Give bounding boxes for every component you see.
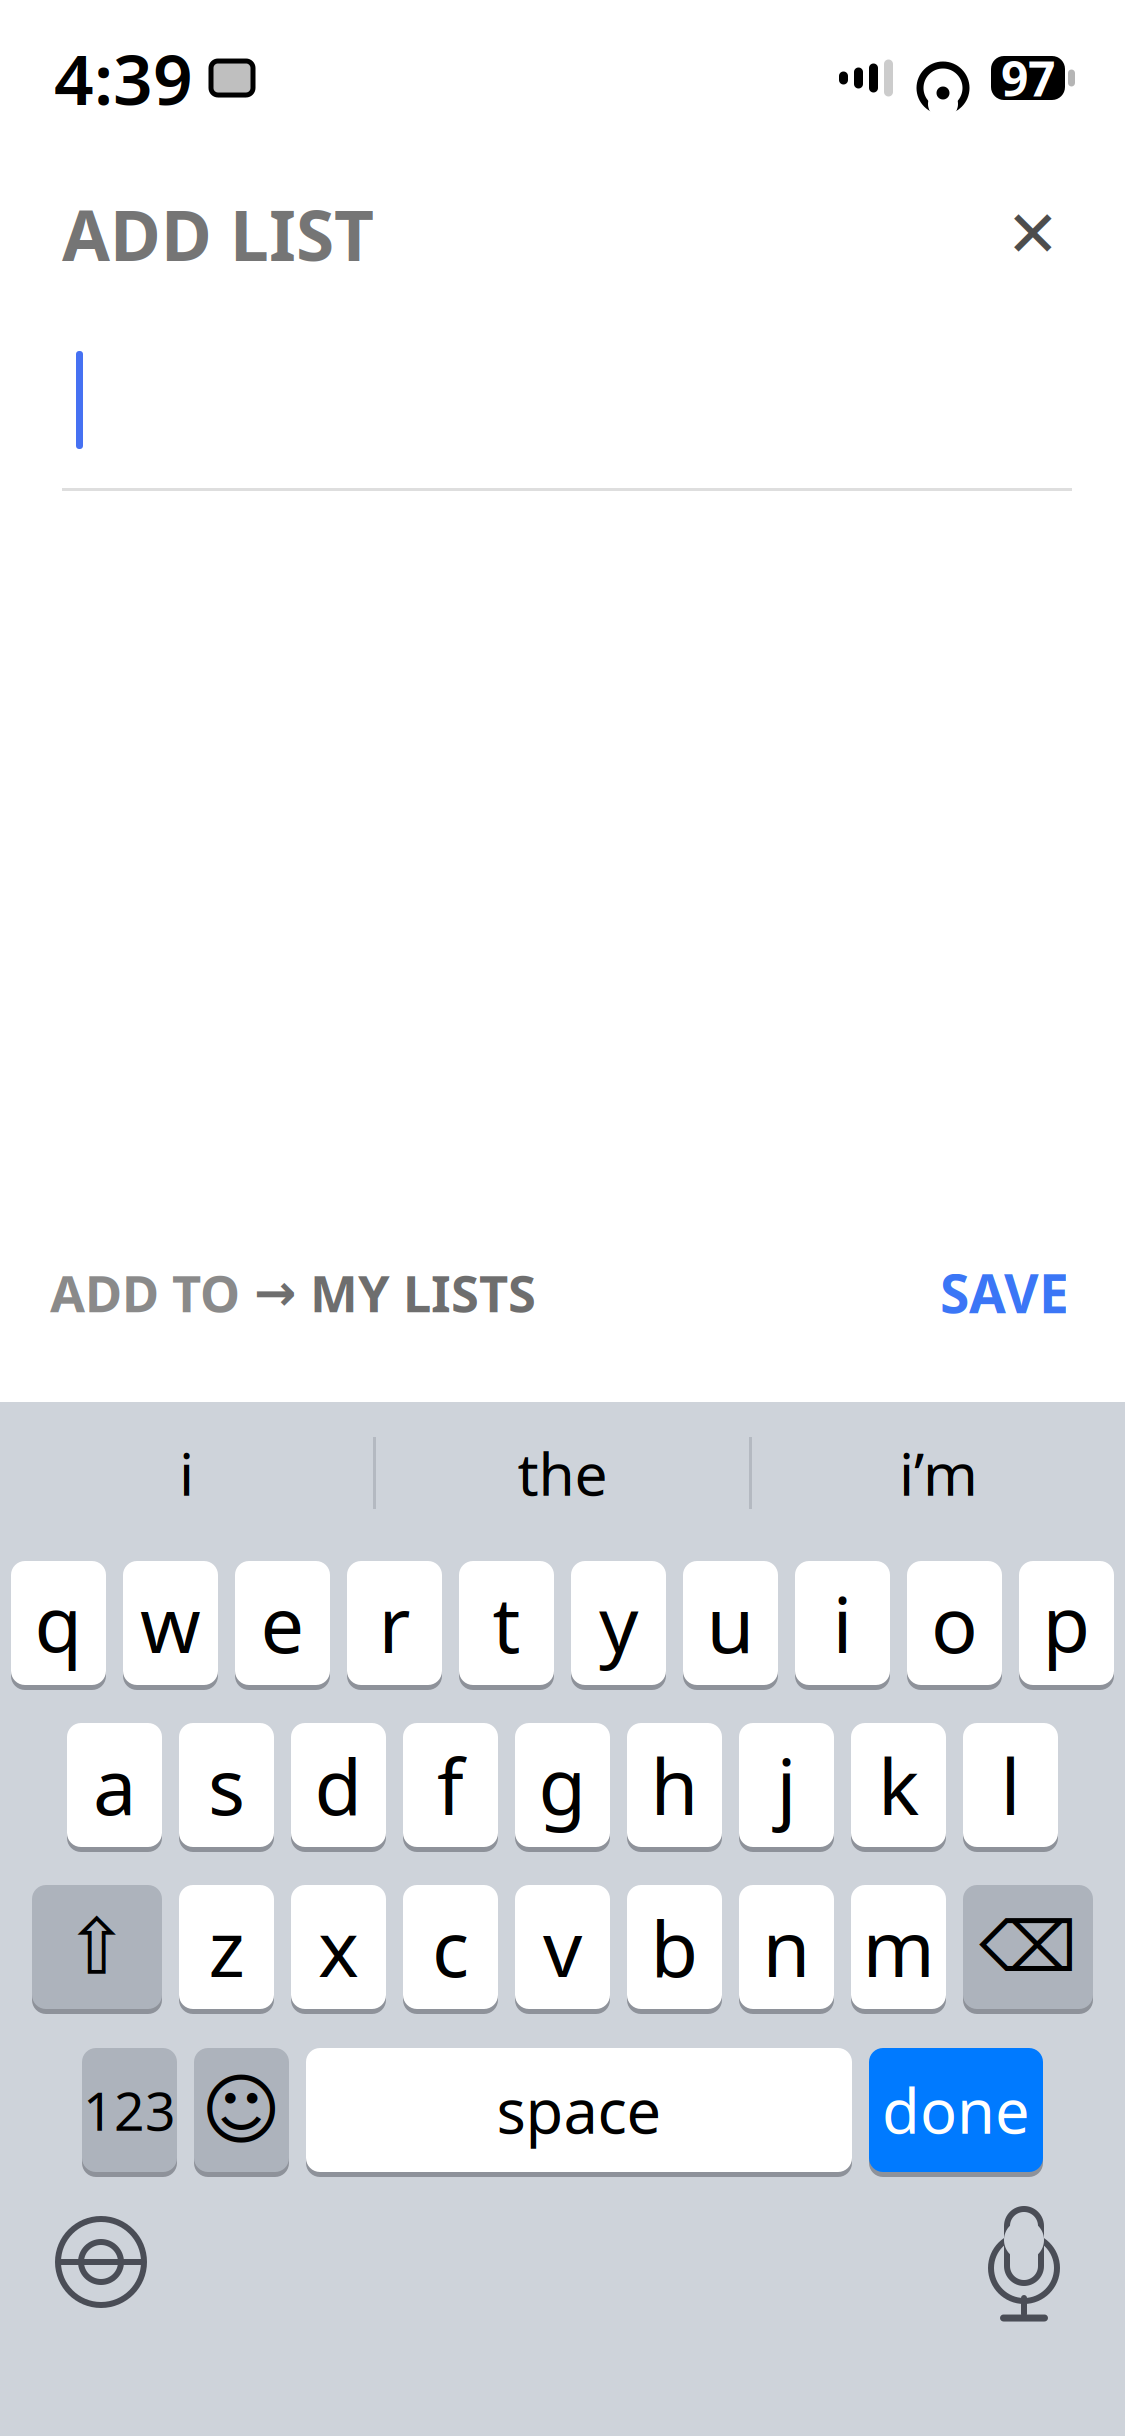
staticText: z	[208, 1896, 244, 1998]
staticText: l	[1000, 1734, 1020, 1836]
staticText: v	[543, 1896, 582, 1998]
button[interactable]: q	[11, 1558, 106, 1688]
button[interactable]: d	[291, 1720, 386, 1850]
button[interactable]: u	[683, 1558, 778, 1688]
button[interactable]: the	[376, 1402, 749, 1544]
staticText: i’m	[899, 1434, 978, 1512]
staticText: q	[34, 1572, 82, 1674]
button[interactable]: space	[306, 2045, 852, 2175]
button[interactable]: i	[795, 1558, 890, 1688]
button[interactable]: g	[515, 1720, 610, 1850]
staticText: ⌫	[979, 1908, 1077, 1986]
button[interactable]: t	[459, 1558, 554, 1688]
staticText: SAVE	[940, 1257, 1069, 1328]
button[interactable]: b	[627, 1882, 722, 2012]
staticText: i	[179, 1434, 194, 1512]
staticText: m	[862, 1896, 934, 1998]
staticText: space	[496, 2069, 661, 2151]
staticText: b	[650, 1896, 698, 1998]
staticText: u	[706, 1572, 754, 1674]
button[interactable]: f	[403, 1720, 498, 1850]
button[interactable]: Dictation	[959, 2197, 1089, 2327]
staticText: ☺	[201, 2066, 282, 2154]
button[interactable]: w	[123, 1558, 218, 1688]
button[interactable]: p	[1019, 1558, 1114, 1688]
button[interactable]: x	[291, 1882, 386, 2012]
staticText: t	[492, 1572, 520, 1674]
staticText: the	[517, 1434, 607, 1512]
button[interactable]: i’m	[752, 1402, 1125, 1544]
staticText: ⇧	[64, 1903, 129, 1991]
button[interactable]: c	[403, 1882, 498, 2012]
staticText: MY LISTS	[310, 1259, 536, 1326]
button[interactable]: Delete	[963, 1882, 1093, 2012]
staticText: j	[776, 1734, 796, 1836]
staticText: →	[254, 1264, 296, 1321]
staticText: e	[260, 1572, 304, 1674]
button[interactable]: z	[179, 1882, 274, 2012]
button[interactable]: y	[571, 1558, 666, 1688]
button[interactable]: j	[739, 1720, 834, 1850]
staticText: n	[762, 1896, 810, 1998]
button[interactable]: a	[67, 1720, 162, 1850]
button[interactable]: i	[0, 1402, 373, 1544]
button[interactable]: k	[851, 1720, 946, 1850]
staticText: 97	[1001, 46, 1055, 110]
staticText: f	[437, 1734, 464, 1836]
staticText: 4:39	[54, 32, 193, 124]
button[interactable]: Next keyboard	[36, 2197, 166, 2327]
button[interactable]: v	[515, 1882, 610, 2012]
button[interactable]: n	[739, 1882, 834, 2012]
staticText: ADD TO	[50, 1259, 240, 1326]
staticText: d	[314, 1734, 362, 1836]
button[interactable]: h	[627, 1720, 722, 1850]
staticText: 123	[83, 2075, 176, 2145]
staticText: o	[931, 1572, 978, 1674]
staticText: i	[832, 1572, 852, 1674]
staticText: w	[140, 1572, 201, 1674]
staticText: ADD LIST	[62, 188, 374, 280]
button[interactable]: m	[851, 1882, 946, 2012]
staticText: r	[378, 1572, 410, 1674]
button[interactable]: o	[907, 1558, 1002, 1688]
button[interactable]: r	[347, 1558, 442, 1688]
staticText: g	[538, 1734, 586, 1836]
button[interactable]: s	[179, 1720, 274, 1850]
button[interactable]: ADD TO	[50, 1233, 536, 1352]
staticText: ✕	[1006, 198, 1060, 270]
button[interactable]: l	[963, 1720, 1058, 1850]
staticText: y	[599, 1572, 638, 1674]
button[interactable]: SAVE	[932, 1231, 1077, 1354]
staticText: p	[1042, 1572, 1090, 1674]
staticText: done	[882, 2069, 1030, 2151]
staticText: c	[432, 1896, 469, 1998]
button[interactable]: Numbers	[82, 2045, 177, 2175]
staticText: a	[93, 1734, 136, 1836]
button[interactable]: Close	[985, 186, 1081, 282]
staticText: k	[878, 1734, 919, 1836]
button[interactable]: e	[235, 1558, 330, 1688]
staticText: x	[318, 1896, 359, 1998]
staticText: h	[650, 1734, 698, 1836]
button[interactable]: Emoji	[194, 2045, 289, 2175]
button[interactable]: Shift	[32, 1882, 162, 2012]
staticText: s	[208, 1734, 245, 1836]
button[interactable]: done	[869, 2045, 1043, 2175]
